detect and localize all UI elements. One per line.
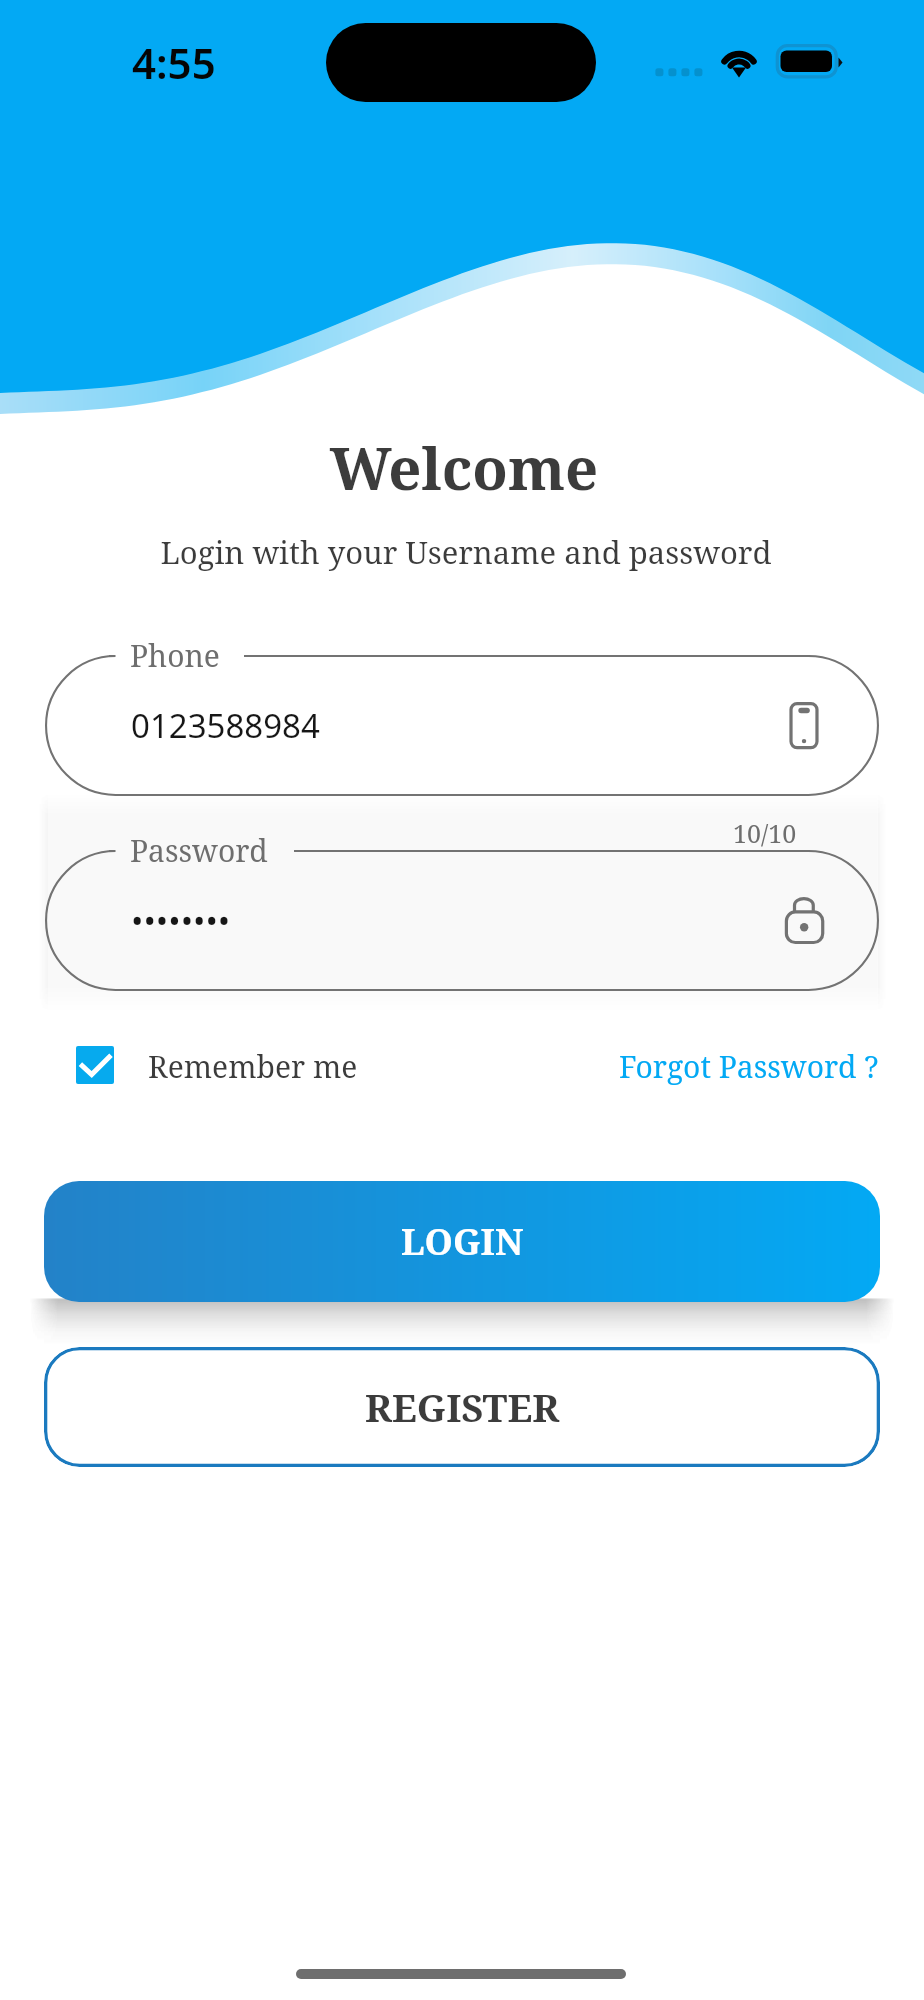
staticText: Login with your Username and password: [4, 531, 924, 573]
staticText: REGISTER: [365, 1381, 560, 1433]
button[interactable]: Forgot Password ?: [600, 1036, 890, 1096]
button[interactable]: LOGIN: [44, 1181, 880, 1302]
staticText: Password: [130, 830, 268, 871]
button[interactable]: Remember me: [60, 1036, 410, 1096]
staticText: Remember me: [148, 1046, 358, 1087]
button[interactable]: Password: [45, 850, 879, 991]
staticText: 10/10: [733, 816, 797, 850]
staticText: Phone: [130, 635, 220, 676]
button[interactable]: REGISTER: [44, 1347, 880, 1467]
other: Password: [774, 886, 844, 956]
staticText: LOGIN: [401, 1217, 524, 1266]
staticText: ••••••••: [131, 898, 231, 943]
button[interactable]: Phone: [45, 655, 879, 796]
other: Phone: [774, 691, 844, 761]
staticText: 4:55: [132, 34, 216, 91]
staticText: Welcome: [2, 428, 924, 507]
staticText: Forgot Password ?: [619, 1046, 879, 1087]
staticText: 0123588984: [131, 703, 320, 748]
